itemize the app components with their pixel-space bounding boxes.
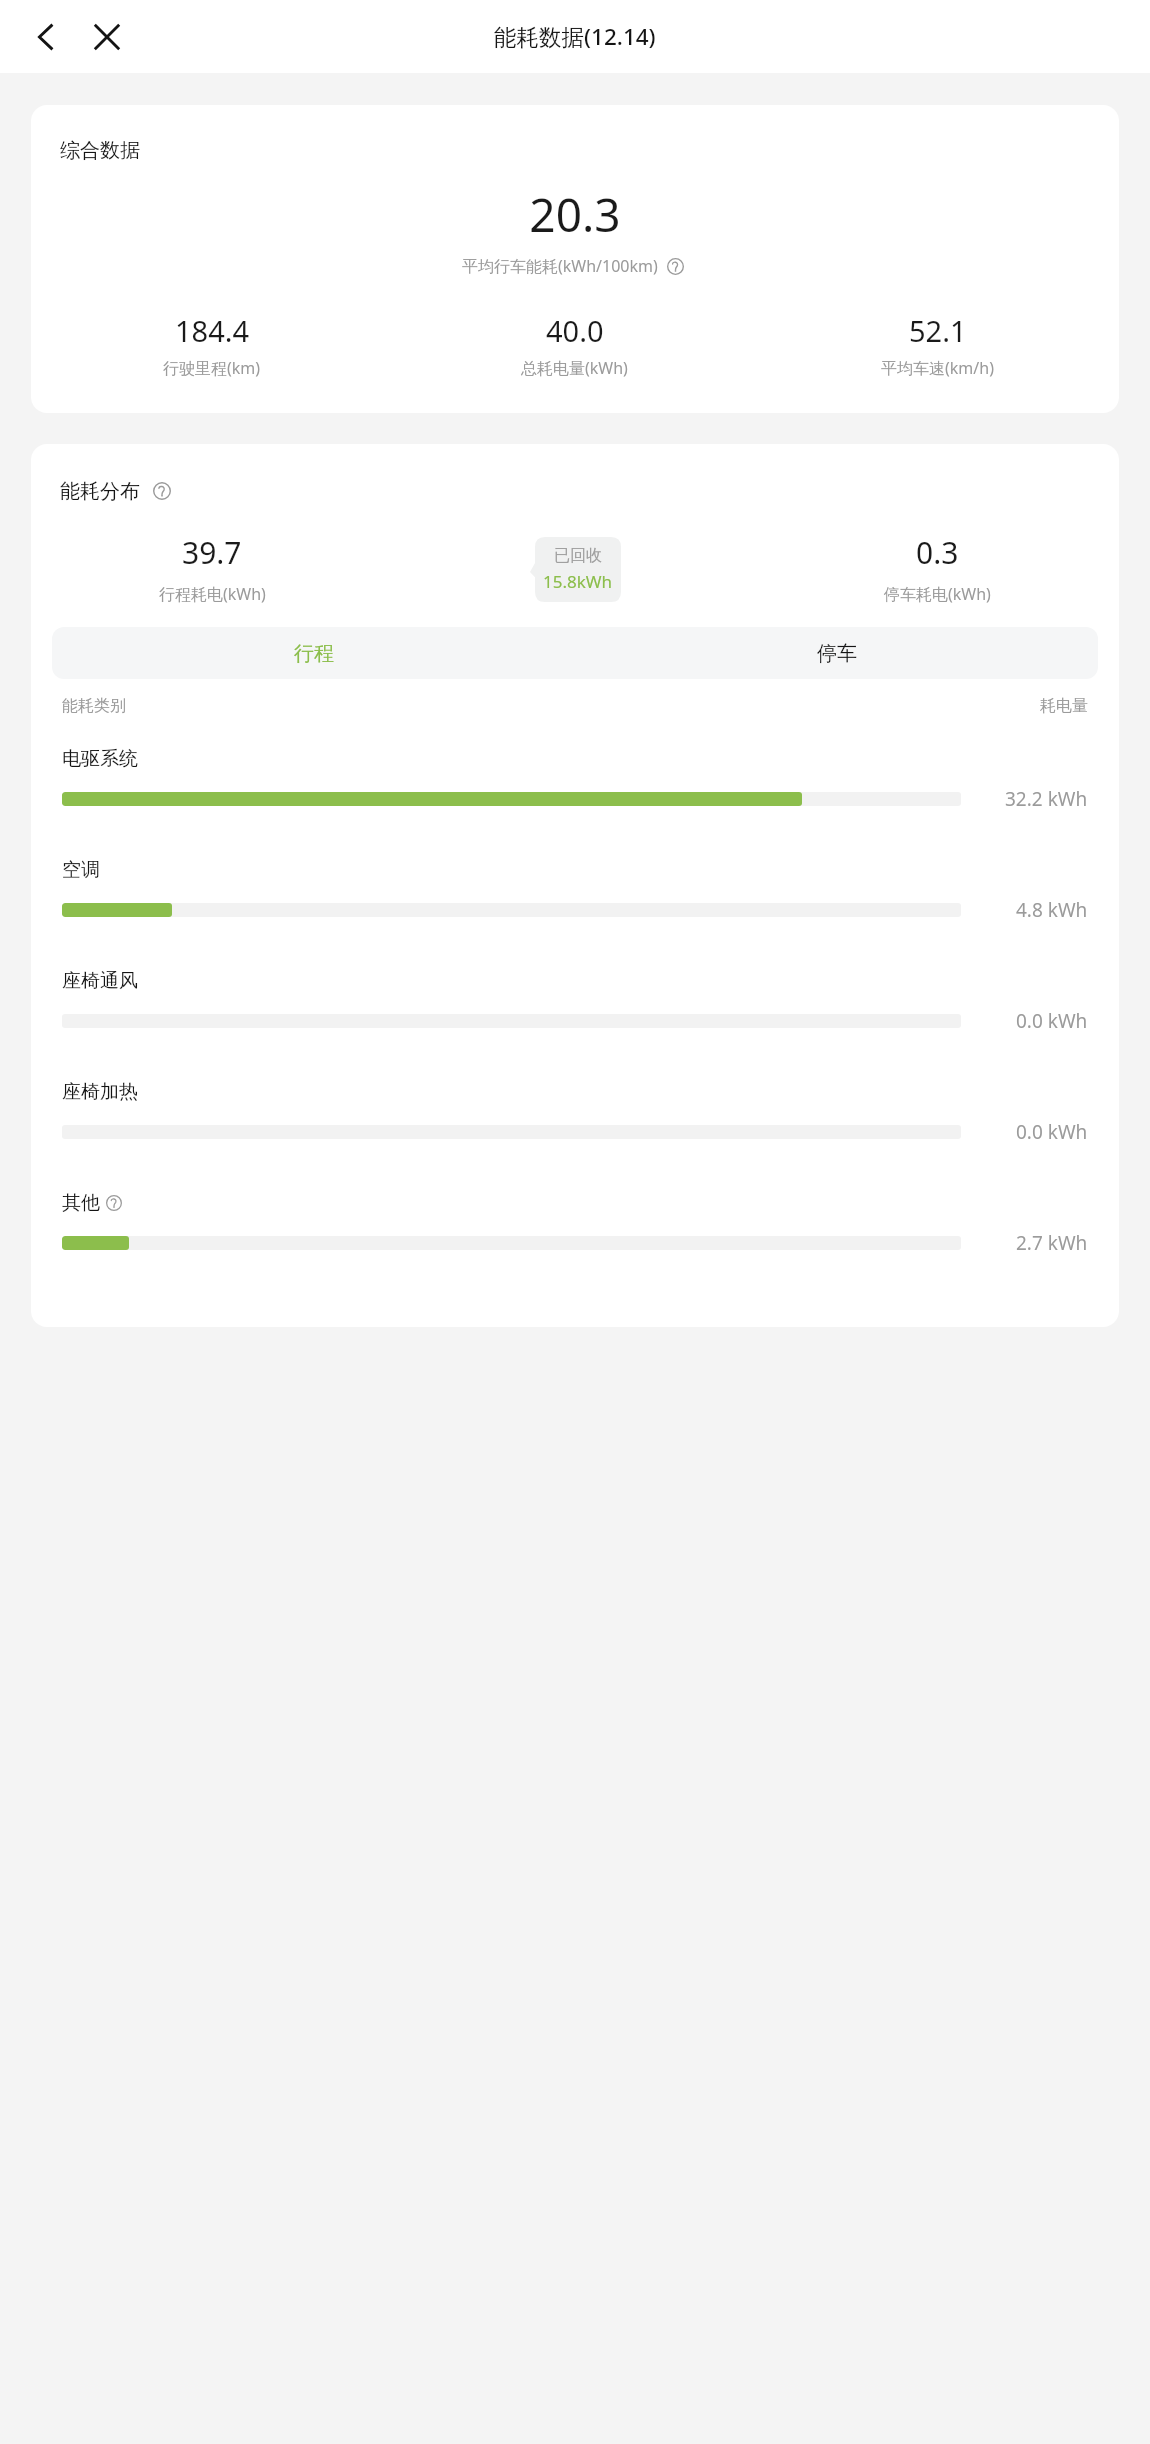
button[interactable]: Close [80,10,134,64]
staticText: 耗电量 [1040,696,1088,716]
button[interactable]: 其他 [31,1176,1119,1287]
button[interactable]: 电驱系统 [31,732,1119,843]
staticText: 20.3 [31,183,1119,246]
staticText: 52.1 [909,311,967,350]
staticText: 平均行车能耗(kWh/100km) [462,255,658,277]
staticText: 已回收 [554,546,602,566]
button[interactable]: 座椅加热 [31,1065,1119,1176]
staticText: 行程耗电(kWh) [159,583,266,605]
button[interactable]: 行程 [52,627,575,679]
button[interactable]: 平均行车能耗说明 [662,253,688,279]
staticText: 座椅通风 [62,969,138,993]
staticText: 184.4 [175,311,250,350]
button[interactable]: Back [20,11,72,63]
staticText: 39.7 [182,532,242,573]
staticText: 0.0 kWh [1016,1008,1088,1034]
staticText: 32.2 kWh [1005,786,1088,812]
staticText: 15.8kWh [543,570,613,593]
button[interactable]: 能耗分布说明 [149,478,175,504]
staticText: 能耗数据(12.14) [494,21,656,52]
staticText: 行程 [294,641,334,666]
staticText: 能耗类别 [62,696,126,716]
staticText: 停车 [817,641,857,666]
staticText: 综合数据 [60,138,140,163]
staticText: 停车耗电(kWh) [884,583,991,605]
staticText: 0.0 kWh [1016,1119,1088,1145]
staticText: 座椅加热 [62,1080,138,1104]
staticText: 0.3 [916,532,959,573]
staticText: 2.7 kWh [1016,1230,1088,1256]
staticText: 其他 [62,1191,100,1215]
staticText: 4.8 kWh [1016,897,1088,923]
staticText: 总耗电量(kWh) [521,357,628,379]
staticText: 行驶里程(km) [163,357,261,379]
button[interactable]: 停车 [575,627,1098,679]
staticText: 空调 [62,858,100,882]
button[interactable]: 空调 [31,843,1119,954]
staticText: 平均车速(km/h) [881,357,994,379]
button[interactable]: 座椅通风 [31,954,1119,1065]
staticText: 40.0 [546,311,604,350]
staticText: 电驱系统 [62,747,138,771]
staticText: 能耗分布 [60,479,140,504]
